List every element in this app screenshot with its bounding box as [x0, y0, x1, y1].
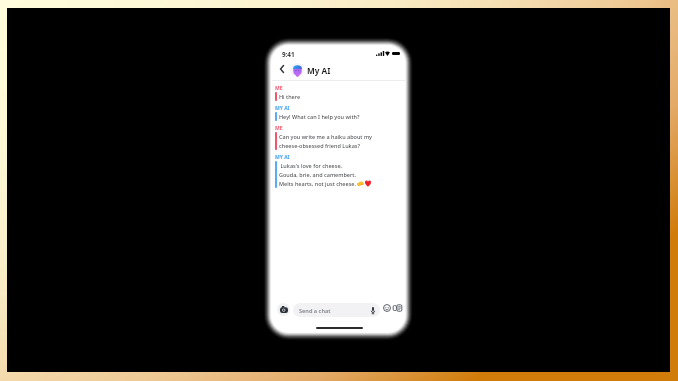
button[interactable]: My AI avatar: [290, 63, 304, 77]
staticText: cheese-obsessed friend Lukas?: [279, 142, 360, 149]
staticText: ME: [275, 125, 283, 131]
staticText: Hey! What can I help you with?: [279, 113, 360, 120]
staticText: Gouda, brie, and camembert,: [279, 171, 356, 178]
staticText: MY AI: [275, 154, 290, 160]
button[interactable]: Camera: [277, 303, 290, 316]
staticText: Melts hearts, not just cheese.: [279, 180, 356, 187]
button[interactable]: Stickers: [382, 303, 391, 312]
staticText: MY AI: [275, 105, 290, 111]
button[interactable]: Send a chat: [293, 303, 380, 317]
button[interactable]: Back: [276, 63, 288, 75]
staticText: Lukas's love for cheese,: [279, 162, 343, 169]
staticText: Can you write me a haiku about my: [279, 133, 373, 140]
staticText: ME: [275, 85, 283, 91]
staticText: Send a chat: [299, 307, 331, 315]
staticText: My AI: [307, 65, 331, 76]
staticText: Hi there: [279, 93, 301, 100]
staticText: 9:41: [282, 50, 295, 59]
button[interactable]: Saved notes: [393, 303, 402, 312]
